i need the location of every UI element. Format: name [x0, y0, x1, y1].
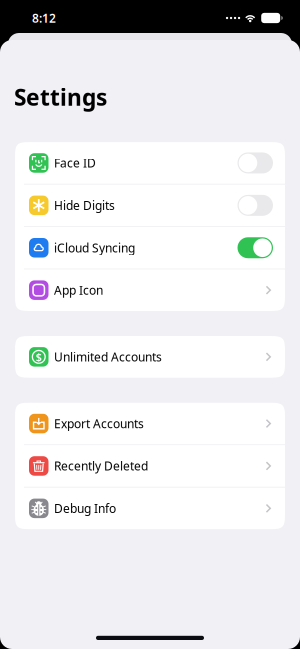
- staticText: Face ID: [54, 155, 96, 171]
- button[interactable]: Recently Deleted: [15, 445, 285, 487]
- staticText: App Icon: [54, 282, 103, 298]
- staticText: Settings: [14, 82, 107, 112]
- staticText: 8:12: [32, 10, 56, 26]
- staticText: Hide Digits: [54, 197, 115, 213]
- staticText: Recently Deleted: [54, 458, 148, 474]
- staticText: Debug Info: [54, 500, 116, 516]
- staticText: $: [36, 350, 42, 364]
- button[interactable]: iCloud Syncing: [15, 227, 285, 269]
- staticText: iCloud Syncing: [54, 240, 135, 256]
- staticText: Export Accounts: [54, 416, 144, 431]
- button[interactable]: Export Accounts: [15, 403, 285, 444]
- button[interactable]: Hide Digits: [15, 184, 285, 226]
- button[interactable]: Face ID: [15, 142, 285, 184]
- staticText: Unlimited Accounts: [54, 349, 162, 365]
- button[interactable]: Debug Info: [15, 487, 285, 529]
- button[interactable]: $: [15, 336, 285, 378]
- button[interactable]: App Icon: [15, 269, 285, 311]
